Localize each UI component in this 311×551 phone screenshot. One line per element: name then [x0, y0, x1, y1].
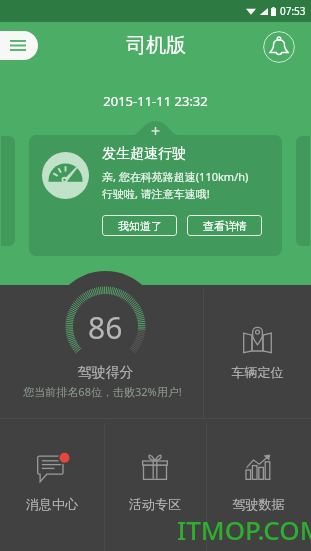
staticText: 发生超速行驶	[102, 145, 186, 163]
button[interactable]: 发生超速行驶	[29, 135, 282, 256]
staticText: 驾驶数据	[206, 496, 311, 512]
button[interactable]: Notifications	[263, 31, 295, 63]
staticText: 我知道了	[118, 219, 162, 233]
staticText: ITMOP.COM	[177, 512, 311, 547]
staticText: 活动专区	[104, 496, 206, 512]
staticText: 驾驶得分	[4, 364, 207, 382]
staticText: 亲, 您在科苑路超速(110km/h) 行驶啦, 请注意车速哦!	[102, 169, 249, 202]
staticText: 86	[88, 307, 123, 348]
button[interactable]: 86	[0, 273, 203, 419]
staticText: 您当前排名68位，击败32%用户!	[1, 384, 204, 399]
staticText: 查看详情	[203, 219, 247, 233]
button[interactable]: 车辆定位	[204, 285, 311, 419]
button[interactable]: 驾驶数据	[206, 419, 311, 551]
staticText: 消息中心	[0, 496, 104, 512]
button[interactable]: Menu	[0, 31, 38, 60]
staticText: 2015-11-11 23:32	[0, 92, 311, 110]
staticText: 07:53	[280, 4, 306, 18]
button[interactable]: 消息中心	[0, 419, 104, 551]
staticText: 司机版	[126, 33, 186, 58]
button[interactable]: 我知道了	[102, 215, 177, 236]
staticText: 车辆定位	[204, 364, 311, 380]
button[interactable]: 查看详情	[187, 215, 262, 236]
button[interactable]: 活动专区	[104, 419, 206, 551]
